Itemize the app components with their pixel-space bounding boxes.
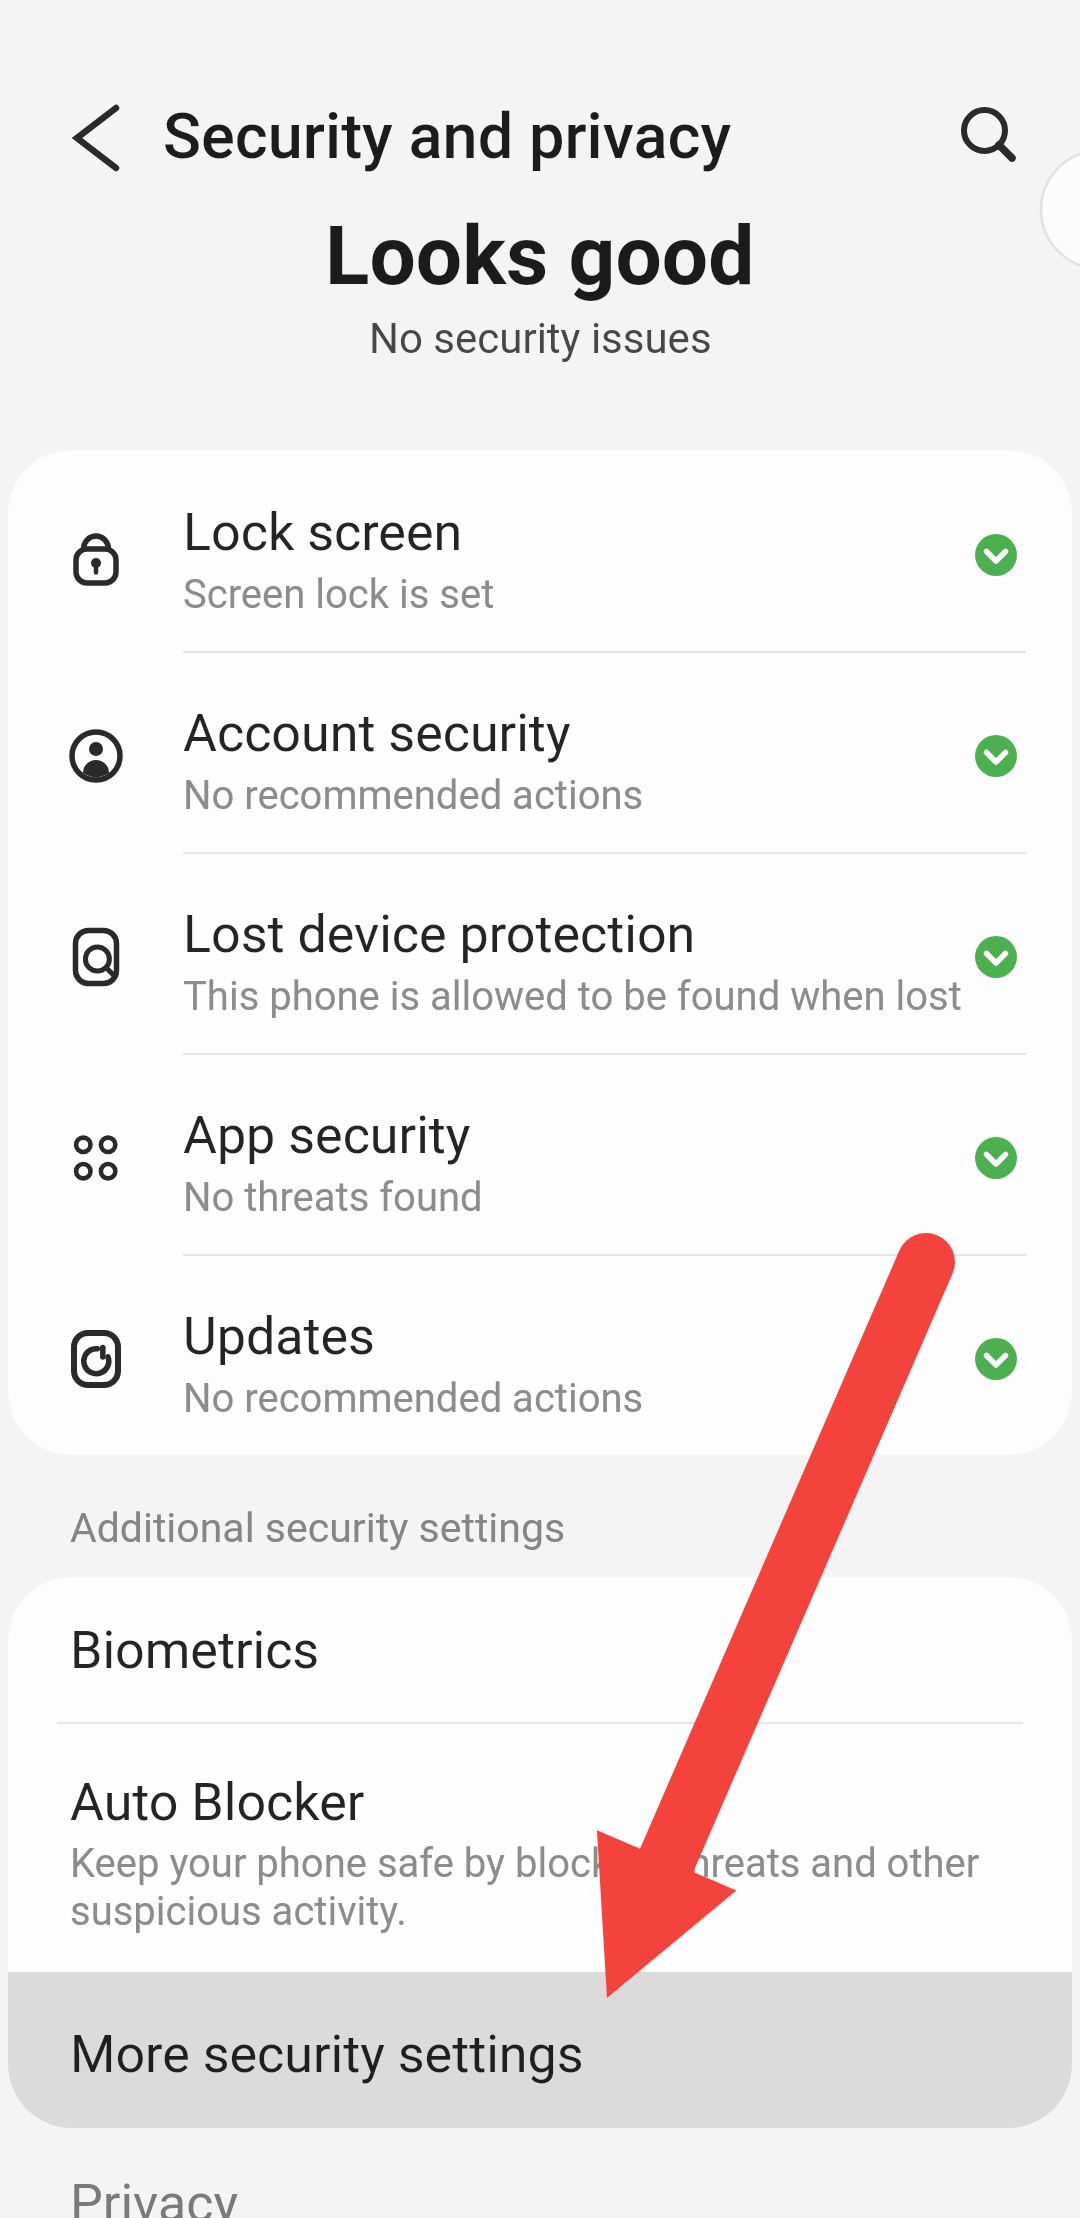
button[interactable]: Lock screen (8, 450, 1072, 651)
staticText: Account security (183, 703, 571, 764)
staticText: Screen lock is set (183, 571, 495, 618)
staticText: Security and privacy (163, 100, 732, 174)
staticText: No threats found (183, 1174, 483, 1221)
button[interactable]: App security (8, 1053, 1072, 1254)
staticText: Looks good (325, 208, 755, 304)
staticText: Lost device protection (183, 904, 696, 965)
staticText: Privacy (70, 2173, 238, 2218)
button[interactable]: Updates (8, 1254, 1072, 1455)
button[interactable]: Auto Blocker (8, 1723, 1072, 1972)
staticText: Auto Blocker (70, 1772, 365, 1833)
staticText: More security settings (70, 2024, 584, 2085)
staticText: Keep your phone safe by blocking threats… (70, 1840, 980, 1935)
button[interactable]: Biometrics (8, 1577, 1072, 1723)
button[interactable]: More security settings (8, 1972, 1072, 2128)
button[interactable] (954, 100, 1026, 172)
staticText: This phone is allowed to be found when l… (183, 973, 962, 1020)
staticText: No recommended actions (183, 772, 644, 819)
button[interactable]: Lost device protection (8, 852, 1072, 1053)
staticText: No security issues (369, 314, 712, 363)
button[interactable]: Account security (8, 651, 1072, 852)
button[interactable] (60, 100, 132, 172)
staticText: Additional security settings (70, 1504, 566, 1552)
staticText: Lock screen (183, 502, 463, 563)
staticText: Biometrics (70, 1620, 320, 1681)
staticText: No recommended actions (183, 1375, 644, 1422)
staticText: App security (183, 1105, 471, 1166)
staticText: Updates (183, 1306, 375, 1367)
